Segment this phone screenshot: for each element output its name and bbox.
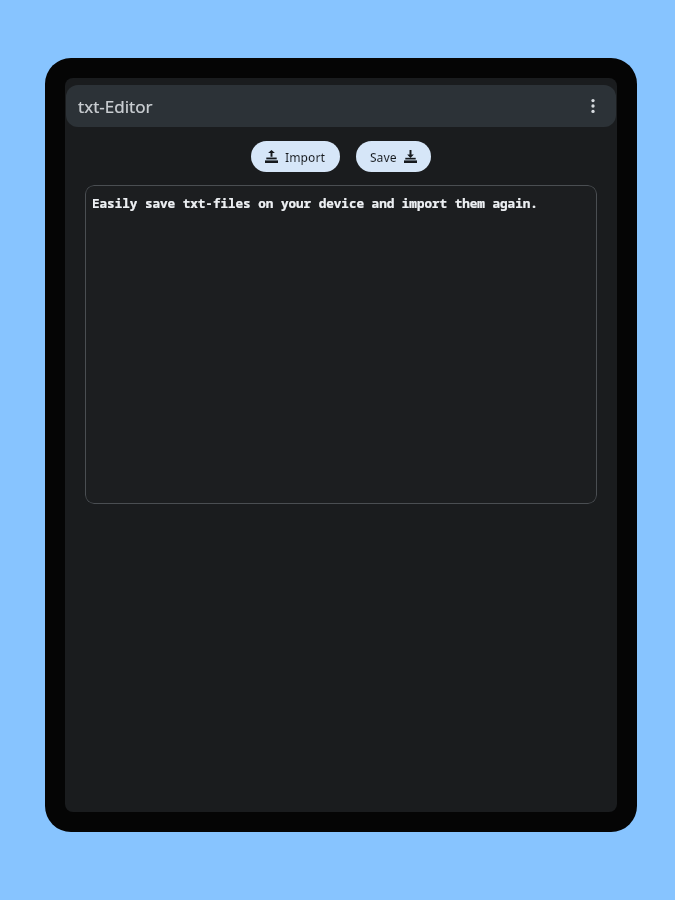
button[interactable]: Easily save txt-files on your device and… (85, 185, 597, 504)
staticText: txt-Editor (78, 95, 153, 118)
staticText: Easily save txt-files on your device and… (92, 195, 590, 212)
staticText: Save (370, 149, 397, 165)
button[interactable]: Import (251, 141, 340, 172)
staticText: Import (285, 149, 326, 165)
button[interactable]: More options (576, 89, 610, 123)
button[interactable]: Save (356, 141, 431, 172)
